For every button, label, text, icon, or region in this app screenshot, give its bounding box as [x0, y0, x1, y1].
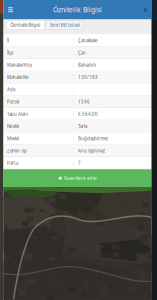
staticText: Ada — [7, 87, 15, 93]
staticText: Mevkii — [7, 136, 19, 142]
staticText: 130/183 — [78, 74, 98, 80]
staticText: Favorilere ekle — [64, 175, 97, 181]
staticText: Tarla — [78, 123, 87, 129]
staticText: 1546 — [78, 99, 90, 105]
button[interactable]: Menu — [3, 0, 17, 19]
staticText: Çan — [78, 50, 86, 56]
staticText: Pafta — [7, 160, 18, 166]
staticText: Ana Taşınmaz — [78, 148, 105, 154]
staticText: 6.564,00 — [78, 111, 98, 117]
button[interactable]: Öznitelik Bilgisi — [6, 20, 44, 30]
staticText: Öznitelik Bilgisi — [53, 5, 102, 14]
staticText: Zemin Tip — [7, 148, 27, 154]
staticText: Mahalle No — [7, 74, 29, 80]
staticText: Çanakkale — [78, 38, 97, 44]
button[interactable]: Sınır/BB Listesi — [46, 20, 84, 30]
button[interactable]: Favorilere ekle — [3, 169, 151, 187]
staticText: Mahalle/Köy — [7, 62, 32, 68]
staticText: Buğdaybitmez — [78, 136, 108, 142]
staticText: Sınır/BB Listesi — [50, 22, 80, 28]
staticText: İlçe — [7, 50, 13, 56]
staticText: Nitelik — [7, 123, 19, 129]
staticText: Tapu Alanı — [7, 111, 28, 117]
staticText: 7 — [78, 160, 81, 166]
staticText: Bahadırlı — [78, 62, 96, 68]
staticText: Parsel — [7, 99, 19, 105]
staticText: Öznitelik Bilgisi — [10, 22, 40, 28]
staticText: İl — [7, 38, 9, 44]
button[interactable]: Account — [139, 0, 151, 19]
